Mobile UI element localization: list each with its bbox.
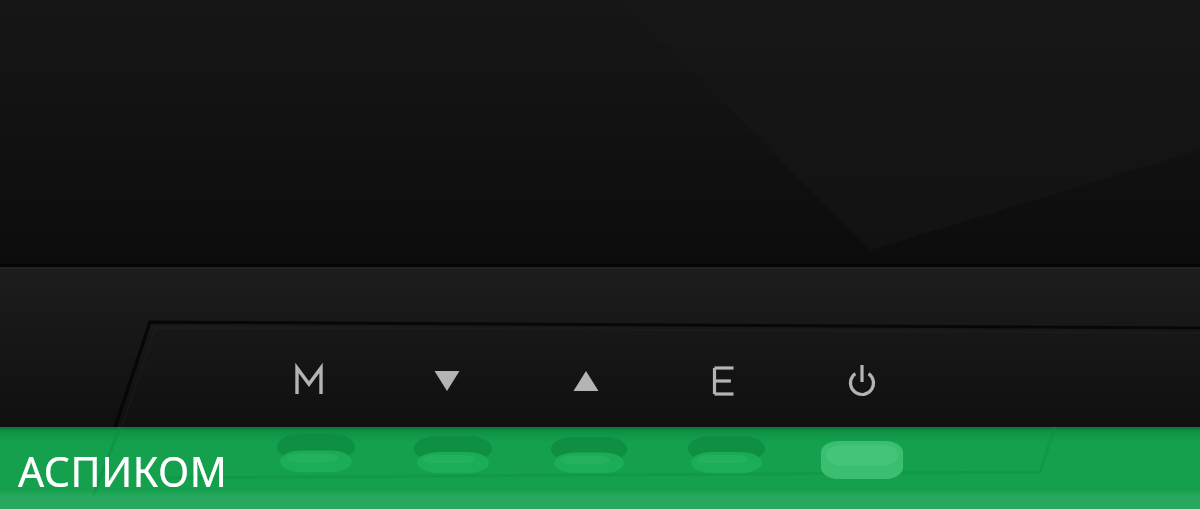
button[interactable]: Up (541, 345, 633, 480)
button[interactable]: Down (404, 345, 494, 480)
staticText: АСПИКОМ (18, 443, 228, 489)
button[interactable]: Exit (678, 345, 770, 480)
button[interactable]: Power (816, 345, 910, 480)
button[interactable]: АСПИКОМ (12, 443, 222, 489)
button[interactable]: Menu (267, 345, 357, 480)
